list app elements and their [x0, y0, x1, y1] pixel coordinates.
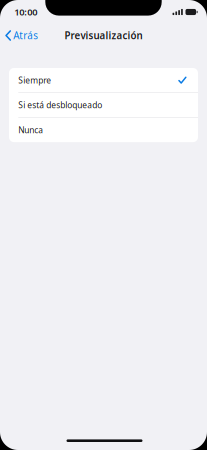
button[interactable]: Siempre [9, 68, 198, 92]
button[interactable]: Si está desbloqueado [9, 93, 198, 117]
staticText: Nunca [18, 124, 43, 136]
staticText: Atrás [13, 29, 38, 42]
button[interactable]: Atrás [0, 25, 44, 46]
button[interactable]: Nunca [9, 118, 198, 142]
staticText: Si está desbloqueado [18, 99, 102, 111]
staticText: Siempre [18, 74, 51, 86]
staticText: Previsualización [64, 29, 142, 42]
staticText: 10:00 [14, 6, 37, 18]
